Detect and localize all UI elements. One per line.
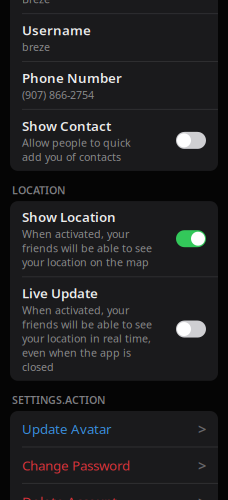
staticText: > [198, 419, 206, 438]
staticText: breze [22, 40, 50, 54]
staticText: Show Location [22, 208, 116, 226]
staticText: Delete Account [22, 493, 117, 500]
staticText: > [198, 455, 206, 475]
button[interactable]: Phone Number [10, 62, 218, 109]
staticText: Allow people to quick add you of contact… [22, 136, 131, 164]
button[interactable]: Show Location [10, 201, 218, 276]
staticText: LOCATION [12, 183, 65, 197]
button[interactable]: Delete Account [10, 484, 218, 500]
staticText: When activated, your friends will be abl… [22, 303, 152, 374]
button[interactable]: Show Contact [10, 110, 218, 171]
button[interactable]: Username [10, 14, 218, 61]
staticText: (907) 866-2754 [22, 88, 94, 102]
staticText: > [198, 492, 206, 500]
staticText: Phone Number [22, 69, 122, 87]
staticText: Username [22, 21, 91, 39]
staticText: When activated, your friends will be abl… [22, 227, 152, 269]
staticText: SETTINGS.ACTION [12, 393, 105, 407]
staticText: Change Password [22, 456, 130, 474]
staticText: Breze [22, 0, 50, 6]
staticText: Update Avatar [22, 420, 112, 438]
button[interactable]: Live Update [10, 277, 218, 381]
staticText: Live Update [22, 284, 98, 302]
button[interactable]: Name [10, 0, 218, 13]
button[interactable]: Update Avatar [10, 411, 218, 446]
button[interactable]: Change Password [10, 447, 218, 483]
staticText: Show Contact [22, 117, 111, 135]
